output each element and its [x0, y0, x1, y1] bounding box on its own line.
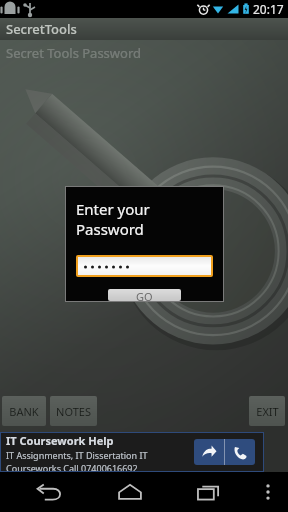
staticText: GO	[136, 289, 153, 301]
button[interactable]: GO	[108, 289, 181, 301]
button[interactable]: EXIT	[249, 396, 285, 426]
staticText: EXIT	[256, 404, 279, 419]
staticText: IT Coursework Help	[6, 433, 114, 448]
staticText: Secret Tools Password	[6, 44, 142, 62]
button[interactable]: Call	[225, 439, 255, 465]
button[interactable]: Recent apps	[169, 472, 248, 512]
staticText: IT Assignments, IT Dissertation IT	[6, 449, 148, 461]
button[interactable]: NOTES	[50, 396, 97, 426]
staticText: NOTES	[56, 404, 91, 419]
staticText: 20:17	[253, 1, 284, 17]
button[interactable]: Home	[90, 472, 169, 512]
button[interactable]: Back	[10, 472, 90, 512]
staticText: BANK	[9, 404, 39, 419]
staticText: Enter your Password	[76, 199, 213, 239]
staticText: SecretTools	[6, 20, 77, 38]
button[interactable]: More options	[248, 472, 288, 512]
button[interactable]: BANK	[2, 396, 46, 426]
button[interactable]: Share	[194, 439, 224, 465]
button[interactable]: IT Coursework Help	[1, 433, 263, 471]
button[interactable]	[78, 257, 211, 275]
staticText: Courseworks Call 07400616692	[6, 462, 138, 471]
